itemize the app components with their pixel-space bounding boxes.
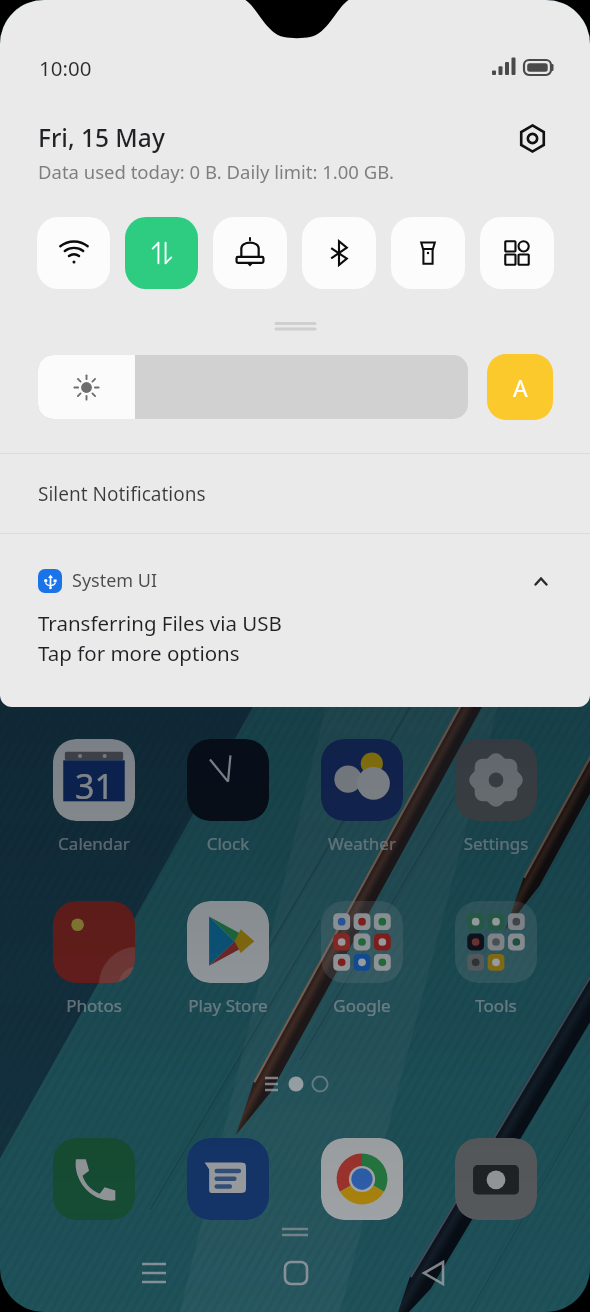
staticText: Clock [161,832,295,855]
button[interactable]: Phone [53,1138,135,1220]
button[interactable]: Wi-Fi [37,217,110,289]
button[interactable]: Settings [510,116,554,160]
button[interactable]: Weather [321,739,403,821]
staticText: Transferring Files via USB [38,609,282,637]
button[interactable]: Mobile data [125,217,198,289]
staticText: Settings [429,832,563,855]
button[interactable]: Silent Notifications [0,454,590,533]
staticText: System UI [72,568,158,593]
button[interactable]: Brightness [38,355,468,419]
staticText: Data used today: 0 B. Daily limit: 1.00 … [38,159,395,184]
button[interactable]: Chrome [321,1138,403,1220]
staticText: Tools [429,994,563,1017]
button[interactable]: Photos [53,901,135,983]
button[interactable]: Clock [187,739,269,821]
button[interactable]: Calendar [53,739,135,821]
button[interactable]: All settings [480,217,554,289]
button[interactable]: Settings [455,739,537,821]
button[interactable]: Play Store [187,901,269,983]
button[interactable]: Google [321,901,403,983]
button[interactable]: Collapse [519,559,563,603]
staticText: Weather [295,832,429,855]
button[interactable]: Auto brightness [487,354,553,420]
staticText: 31 [75,763,114,809]
button[interactable]: Camera [455,1138,537,1220]
button[interactable]: Notifications [213,217,287,289]
staticText: Photos [27,994,161,1017]
staticText: Fri, 15 May [38,121,165,154]
staticText: Google [295,994,429,1017]
staticText: Silent Notifications [38,481,206,507]
button[interactable]: Tools [455,901,537,983]
button[interactable]: System UI [0,534,590,707]
staticText: Play Store [161,994,295,1017]
staticText: 10:00 [39,54,92,82]
staticText: A [513,372,528,403]
staticText: Tap for more options [38,639,240,667]
button[interactable]: Flashlight [391,217,465,289]
button[interactable]: Messages [187,1138,269,1220]
button[interactable]: Bluetooth [302,217,376,289]
staticText: Calendar [27,832,161,855]
